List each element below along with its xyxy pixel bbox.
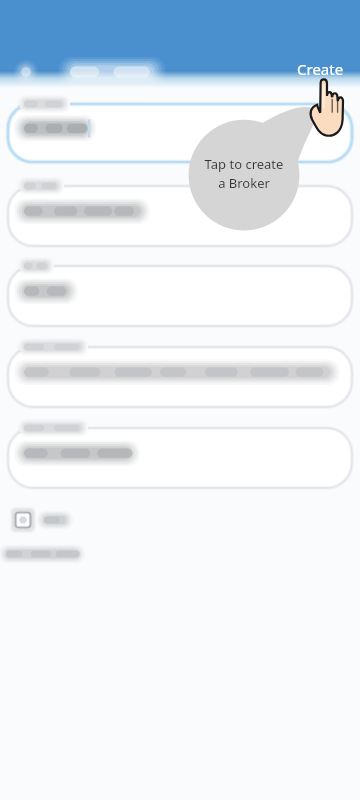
staticText: Tap to create a Broker xyxy=(189,155,299,192)
button[interactable] xyxy=(8,507,72,533)
staticText: Create xyxy=(297,59,344,79)
button[interactable] xyxy=(8,347,352,407)
button[interactable] xyxy=(8,266,352,326)
button[interactable] xyxy=(8,186,352,246)
button[interactable]: Tap to create a Broker xyxy=(178,106,310,234)
button[interactable] xyxy=(8,104,352,162)
other: Tap here xyxy=(305,78,345,136)
button[interactable] xyxy=(8,428,352,488)
button[interactable]: Back xyxy=(12,58,40,86)
button[interactable]: Create xyxy=(291,57,350,81)
